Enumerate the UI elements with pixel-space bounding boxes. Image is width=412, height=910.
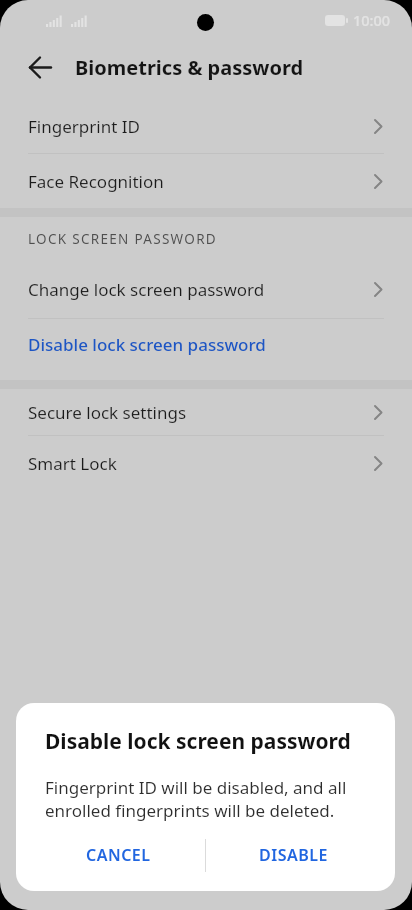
staticText: Secure lock settings (28, 401, 187, 424)
button[interactable]: Secure lock settings (0, 389, 412, 435)
staticText: Smart Lock (28, 452, 117, 475)
staticText: LOCK SCREEN PASSWORD (28, 230, 218, 248)
button[interactable]: Face Recognition (0, 154, 412, 208)
staticText: Fingerprint ID (28, 115, 140, 138)
staticText: Fingerprint ID will be disabled, and all… (45, 776, 347, 822)
button[interactable]: CANCEL (16, 830, 205, 880)
button[interactable]: Change lock screen password (0, 261, 412, 318)
button[interactable]: Disable lock screen password (0, 319, 412, 370)
staticText: Face Recognition (28, 170, 164, 193)
button[interactable] (20, 47, 60, 87)
staticText: 10:00 (353, 10, 391, 30)
staticText: Biometrics & password (75, 54, 304, 81)
staticText: DISABLE (259, 844, 328, 866)
staticText: Disable lock screen password (28, 333, 266, 356)
staticText: CANCEL (86, 844, 151, 866)
staticText: Disable lock screen password (45, 727, 351, 756)
button[interactable]: Smart Lock (0, 436, 412, 490)
staticText: Change lock screen password (28, 278, 265, 301)
button[interactable]: Fingerprint ID (0, 99, 412, 153)
button[interactable]: DISABLE (205, 830, 395, 880)
